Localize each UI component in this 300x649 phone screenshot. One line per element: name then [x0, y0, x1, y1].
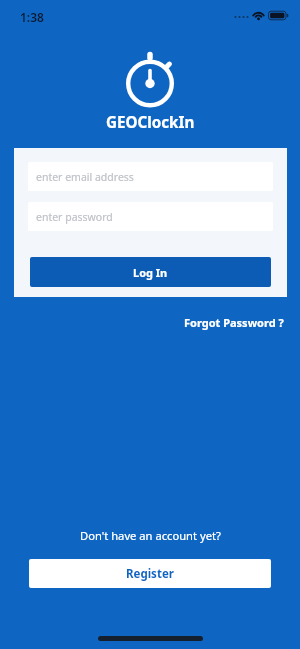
staticText: Forgot Password ?	[184, 315, 284, 330]
button[interactable]: Register	[29, 559, 271, 588]
button[interactable]: enter password	[28, 202, 273, 231]
staticText: Log In	[133, 265, 168, 280]
button[interactable]: enter email address	[28, 162, 273, 191]
staticText: Don't have an account yet?	[80, 528, 221, 543]
staticText: GEOClockIn	[106, 112, 195, 133]
staticText: enter password	[36, 210, 113, 224]
button[interactable]: Forgot Password ?	[184, 315, 300, 330]
staticText: Register	[126, 566, 174, 582]
button[interactable]: Log In	[30, 257, 271, 287]
staticText: enter email address	[36, 170, 134, 184]
staticText: 1:38	[20, 9, 44, 25]
